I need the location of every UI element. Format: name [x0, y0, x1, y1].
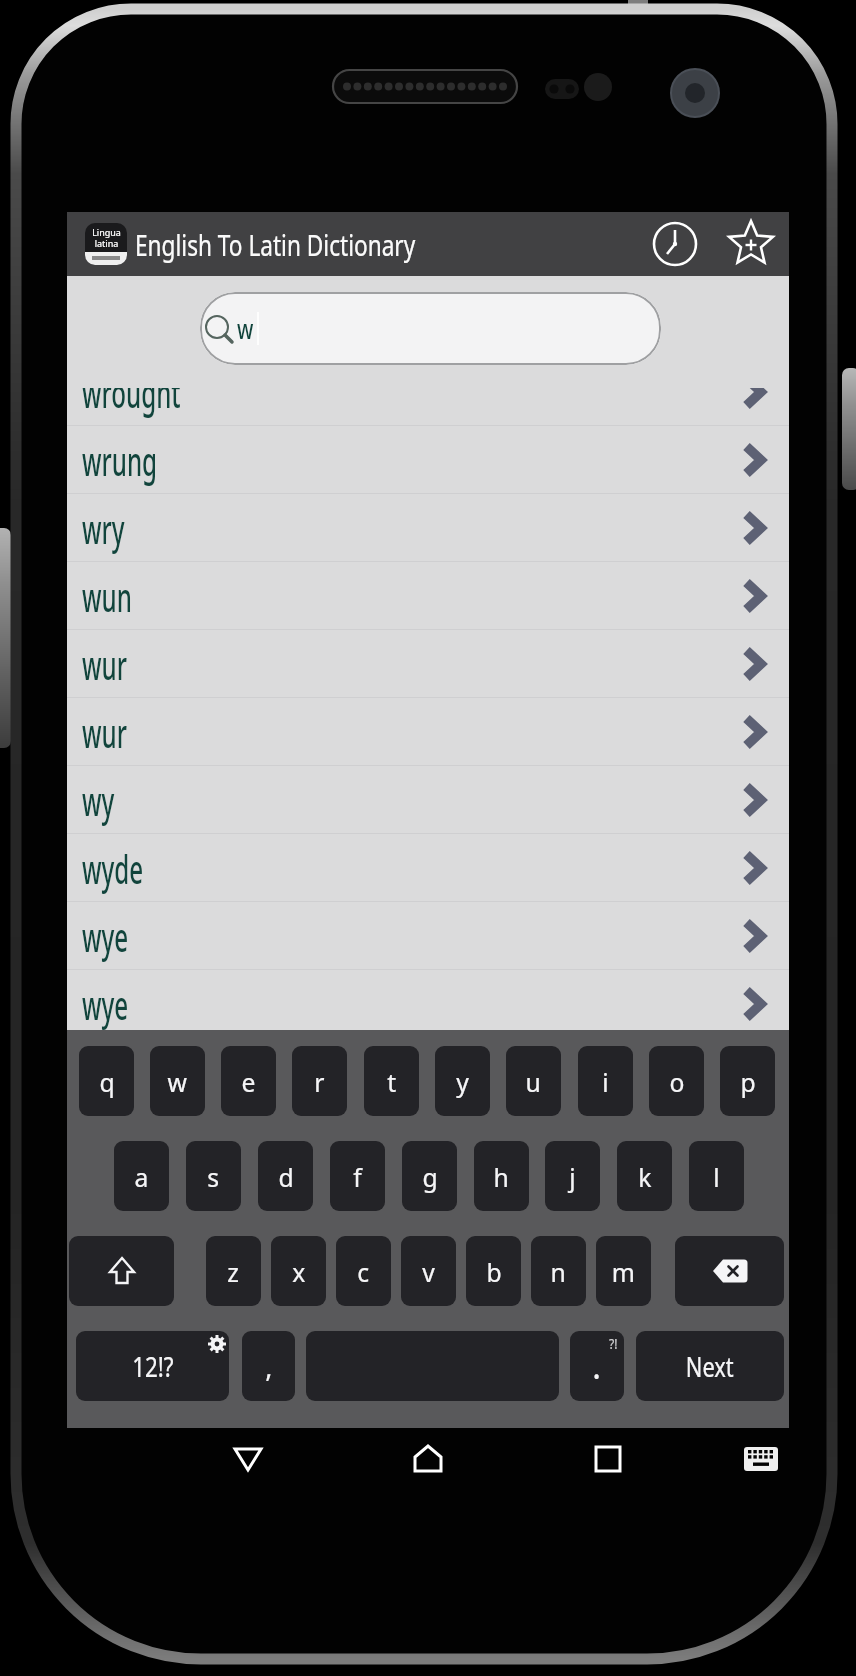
button[interactable]: . [570, 1331, 624, 1401]
staticText: h [493, 1159, 510, 1194]
button[interactable]: a [114, 1141, 169, 1211]
button[interactable]: y [435, 1046, 490, 1116]
button[interactable] [675, 1236, 784, 1306]
staticText: wy [82, 774, 115, 827]
staticText: Lingua latina [92, 226, 121, 249]
button[interactable]: e [221, 1046, 276, 1116]
button[interactable]: wye [67, 902, 789, 970]
staticText: . [592, 1343, 602, 1389]
staticText: m [612, 1254, 635, 1289]
button[interactable] [731, 1429, 791, 1489]
staticText: q [99, 1064, 115, 1099]
staticText: k [638, 1159, 652, 1194]
staticText: s [207, 1159, 220, 1194]
button[interactable]: wyde [67, 834, 789, 902]
button[interactable]: wun [67, 562, 789, 630]
staticText: ?! [609, 1333, 618, 1353]
staticText: r [314, 1064, 325, 1099]
staticText: wye [82, 978, 128, 1030]
button[interactable]: q [79, 1046, 134, 1116]
staticText: w [167, 1064, 187, 1099]
staticText: x [292, 1254, 306, 1289]
staticText: y [456, 1064, 470, 1099]
button[interactable]: wrought [67, 388, 789, 426]
staticText: j [569, 1159, 576, 1194]
staticText: wrought [82, 388, 181, 419]
staticText: i [602, 1064, 609, 1099]
button[interactable]: Next [636, 1331, 784, 1401]
button[interactable]: o [649, 1046, 704, 1116]
staticText: u [525, 1064, 542, 1099]
staticText: c [357, 1254, 370, 1289]
button[interactable]: p [720, 1046, 775, 1116]
button[interactable] [218, 1429, 278, 1489]
staticText: English To Latin Dictionary [135, 225, 416, 264]
staticText: wur [82, 706, 127, 759]
button[interactable] [721, 213, 781, 273]
button[interactable]: , [242, 1331, 295, 1401]
staticText: t [387, 1064, 397, 1099]
staticText: Next [686, 1347, 734, 1385]
staticText: p [740, 1064, 756, 1099]
staticText: , [265, 1347, 273, 1385]
staticText: wry [82, 502, 125, 555]
button[interactable]: z [206, 1236, 261, 1306]
staticText: f [353, 1159, 362, 1194]
button[interactable]: d [258, 1141, 313, 1211]
staticText: wye [82, 910, 128, 963]
button[interactable]: c [336, 1236, 391, 1306]
staticText: g [422, 1159, 438, 1194]
button[interactable] [69, 1236, 174, 1306]
button[interactable]: Lingua latina [85, 223, 127, 265]
button[interactable]: wur [67, 630, 789, 698]
staticText: 12!? [132, 1347, 174, 1385]
staticText: d [278, 1159, 294, 1194]
button[interactable]: s [186, 1141, 241, 1211]
staticText: e [241, 1064, 256, 1099]
button[interactable]: u [506, 1046, 561, 1116]
staticText: l [713, 1159, 720, 1194]
staticText: o [669, 1064, 685, 1099]
staticText: wyde [82, 842, 143, 895]
button[interactable]: wye [67, 970, 789, 1030]
button[interactable] [398, 1429, 458, 1489]
button[interactable]: r [292, 1046, 347, 1116]
button[interactable]: w [150, 1046, 205, 1116]
button[interactable]: n [531, 1236, 586, 1306]
staticText: wur [82, 638, 127, 691]
button[interactable]: w [200, 292, 661, 365]
button[interactable]: j [545, 1141, 600, 1211]
staticText: n [550, 1254, 567, 1289]
staticText: w [237, 310, 253, 347]
button[interactable]: i [578, 1046, 633, 1116]
button[interactable]: m [596, 1236, 651, 1306]
button[interactable]: x [271, 1236, 326, 1306]
button[interactable]: t [364, 1046, 419, 1116]
button[interactable]: wy [67, 766, 789, 834]
button[interactable]: h [474, 1141, 529, 1211]
button[interactable]: 12!? [76, 1331, 229, 1401]
button[interactable]: b [466, 1236, 521, 1306]
button[interactable]: k [617, 1141, 672, 1211]
staticText: wun [82, 570, 132, 623]
button[interactable] [306, 1331, 559, 1401]
button[interactable]: v [401, 1236, 456, 1306]
button[interactable] [645, 214, 705, 274]
button[interactable]: wrung [67, 426, 789, 494]
staticText: b [486, 1254, 502, 1289]
button[interactable]: f [330, 1141, 385, 1211]
button[interactable]: wry [67, 494, 789, 562]
button[interactable]: g [402, 1141, 457, 1211]
staticText: v [422, 1254, 436, 1289]
staticText: wrung [82, 434, 158, 487]
button[interactable]: l [689, 1141, 744, 1211]
staticText: z [227, 1254, 240, 1289]
button[interactable] [578, 1429, 638, 1489]
button[interactable]: wur [67, 698, 789, 766]
staticText: a [134, 1159, 149, 1194]
